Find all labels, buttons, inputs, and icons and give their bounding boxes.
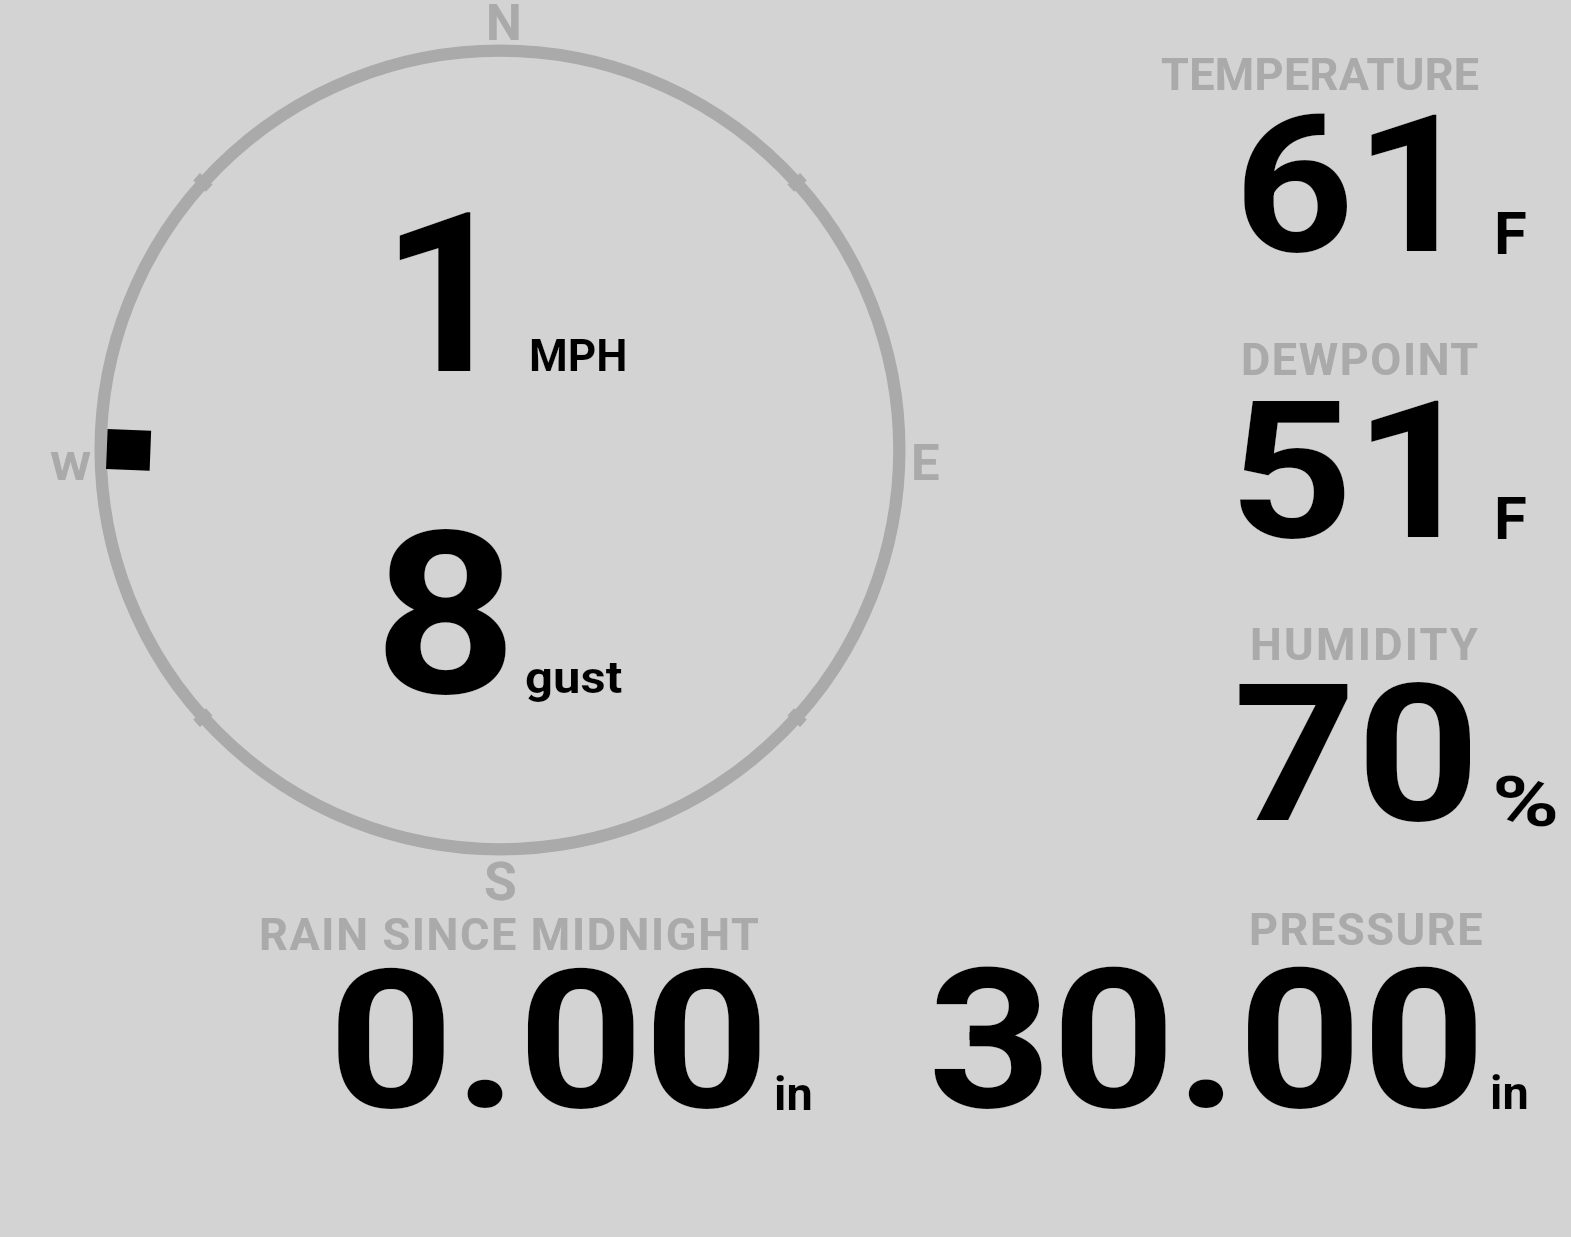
staticText: 61 (1234, 73, 1475, 297)
button[interactable]: Wind direction and speed (0, 0, 1010, 940)
staticText: PRESSURE (1249, 903, 1485, 956)
staticText: in (1490, 1065, 1529, 1120)
staticText: % (1492, 761, 1560, 843)
staticText: 70 (1233, 643, 1481, 867)
button[interactable]: DEWPOINT (1100, 295, 1571, 580)
staticText: 1 (381, 165, 512, 425)
staticText: MPH (529, 330, 628, 382)
staticText: in (774, 1066, 813, 1121)
button[interactable]: RAIN SINCE MIDNIGHT (120, 880, 880, 1237)
staticText: 30.00 (928, 927, 1486, 1154)
staticText: F (1494, 483, 1527, 553)
staticText: gust (525, 651, 623, 704)
staticText: DEWPOINT (1241, 333, 1480, 386)
staticText: HUMIDITY (1250, 618, 1481, 671)
staticText: W (50, 445, 92, 490)
button[interactable]: PRESSURE (880, 880, 1571, 1237)
staticText: S (484, 851, 517, 913)
staticText: F (1494, 198, 1527, 268)
staticText: N (486, 0, 522, 52)
staticText: 8 (374, 484, 518, 748)
staticText: 0.00 (328, 928, 771, 1154)
button[interactable]: HUMIDITY (1100, 580, 1571, 865)
staticText: RAIN SINCE MIDNIGHT (259, 908, 761, 961)
staticText: TEMPERATURE (1161, 48, 1480, 101)
staticText: E (911, 433, 940, 492)
button[interactable]: TEMPERATURE (1100, 10, 1571, 295)
staticText: 51 (1229, 360, 1479, 584)
